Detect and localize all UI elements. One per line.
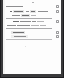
- button[interactable]: Row marker: [56, 5, 59, 8]
- button[interactable]: [11, 31, 25, 34]
- button[interactable]: Row marker: [6, 5, 59, 8]
- button[interactable]: [21, 14, 30, 17]
- button[interactable]: Row marker: [6, 9, 59, 13]
- button[interactable]: Row marker: [56, 20, 59, 23]
- button[interactable]: [13, 10, 24, 13]
- button[interactable]: [6, 14, 59, 17]
- button[interactable]: [30, 10, 36, 13]
- button[interactable]: [6, 24, 59, 27]
- button[interactable]: Row marker: [6, 30, 59, 34]
- button[interactable]: Row marker: [56, 35, 59, 38]
- button[interactable]: Row marker: [6, 35, 59, 38]
- button[interactable]: Row marker: [6, 20, 59, 23]
- button[interactable]: Row marker: [56, 31, 59, 34]
- button[interactable]: Row marker: [56, 10, 59, 13]
- button[interactable]: [11, 35, 28, 38]
